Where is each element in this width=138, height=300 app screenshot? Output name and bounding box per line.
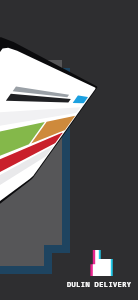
- staticText: DULIN DELIVERY: [67, 280, 132, 290]
